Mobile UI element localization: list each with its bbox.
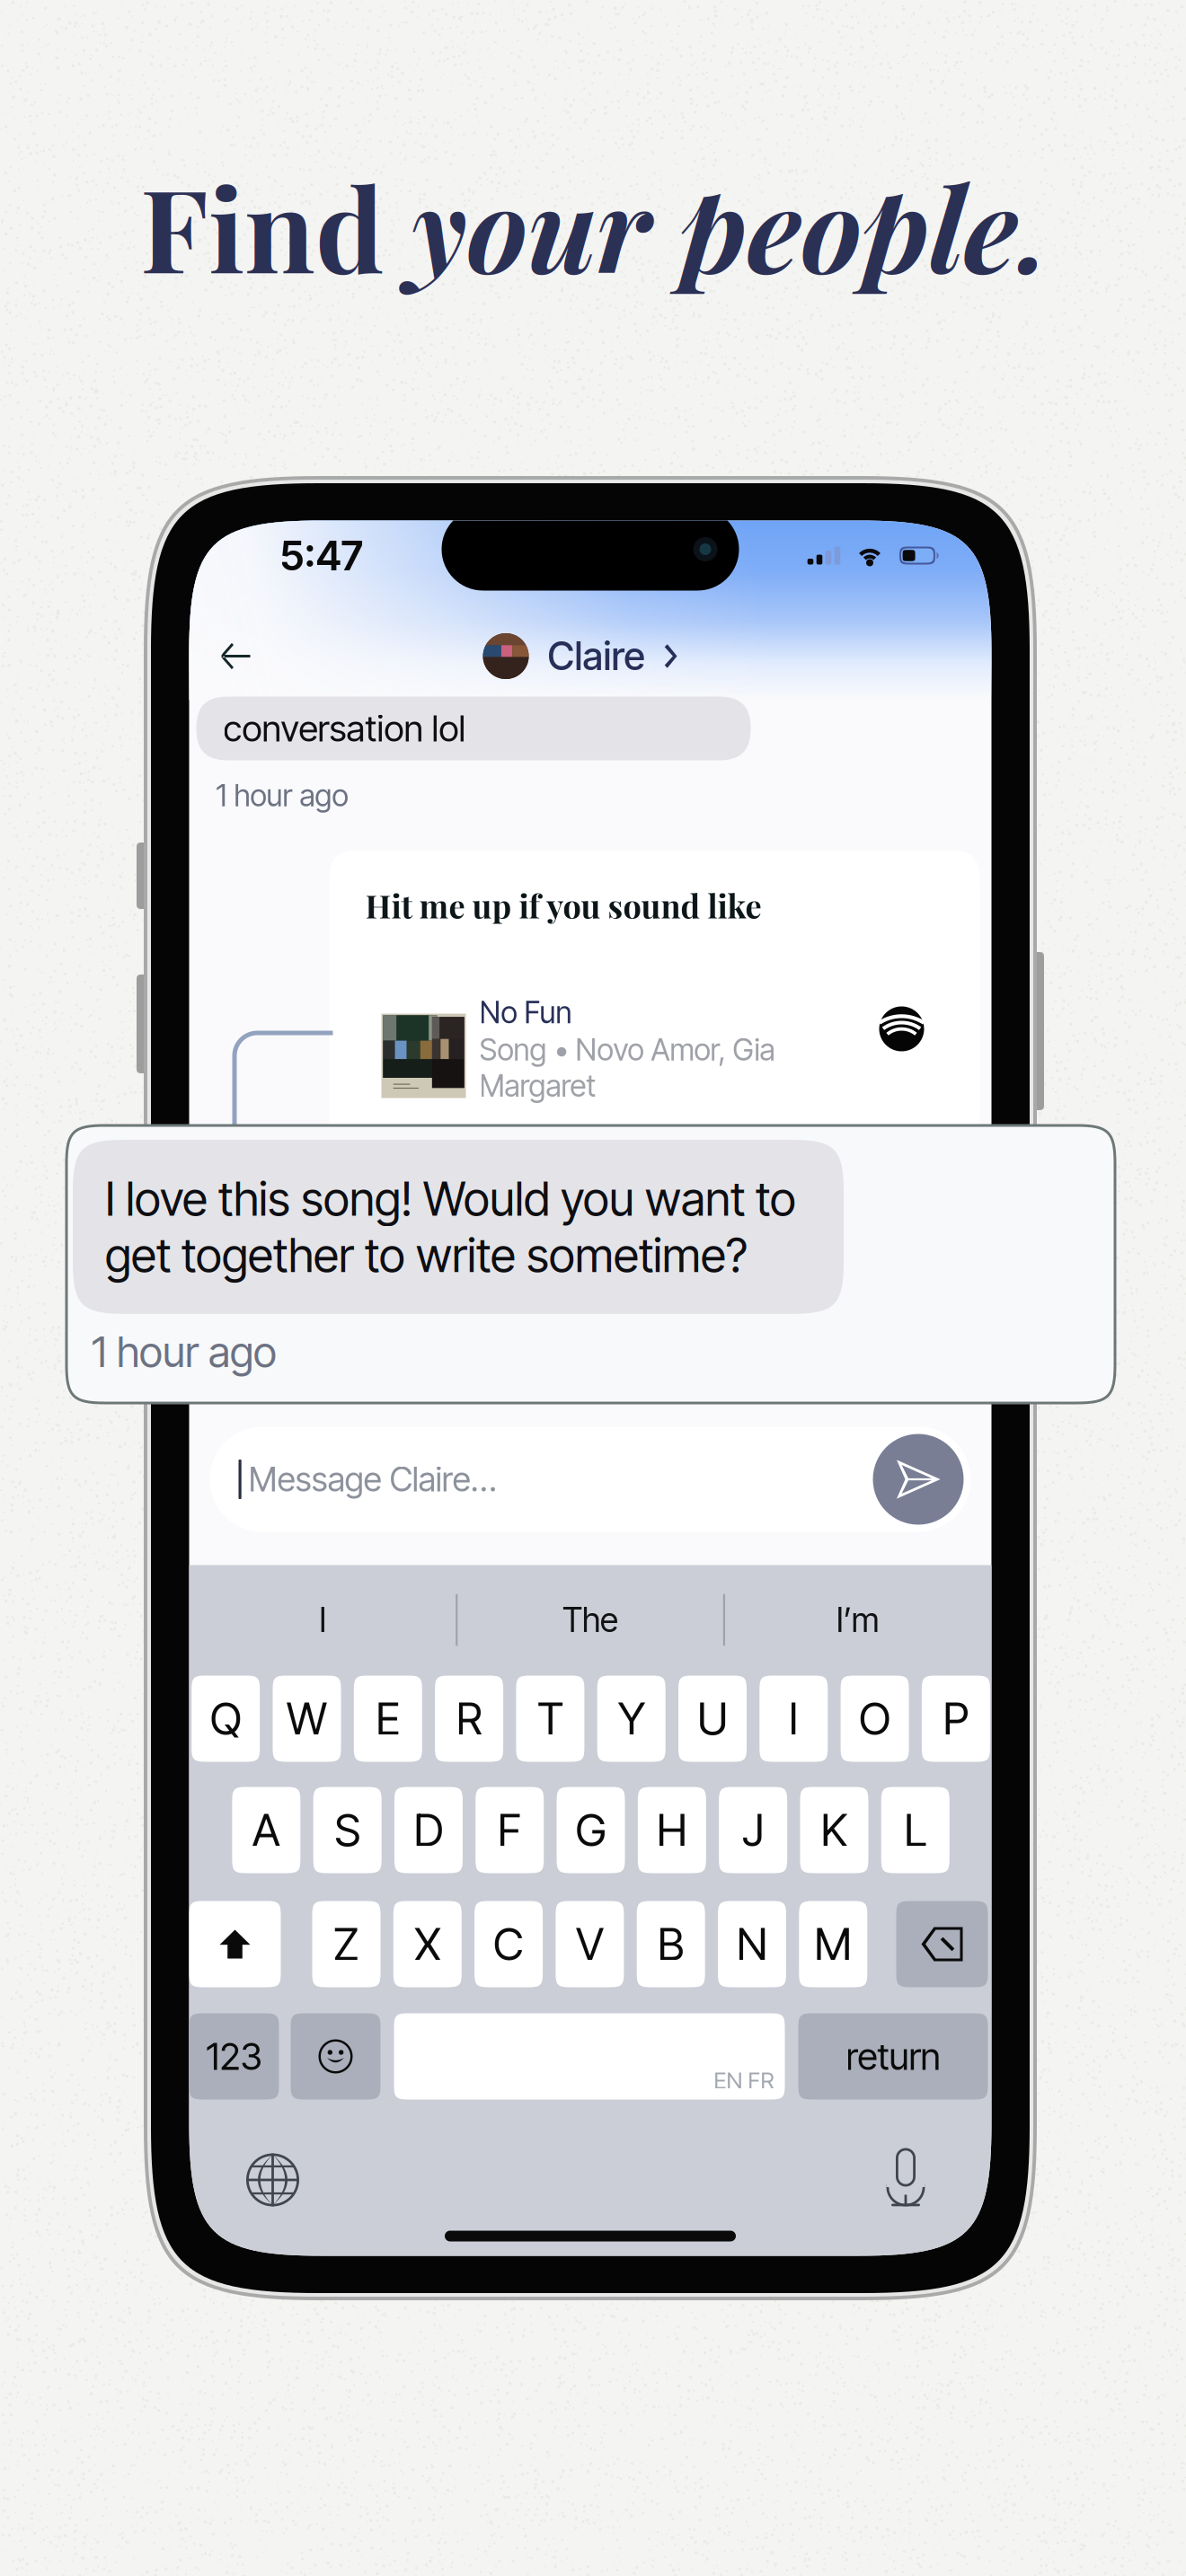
button[interactable]: W (273, 1676, 341, 1762)
button[interactable]: Emoji (291, 2013, 381, 2100)
staticText: H (657, 1803, 687, 1857)
staticText: I’m (836, 1600, 879, 1640)
button[interactable]: return (798, 2013, 988, 2100)
staticText: S (334, 1803, 360, 1857)
staticText: P (943, 1692, 969, 1746)
staticText: return (846, 2034, 940, 2079)
button[interactable]: N (718, 1901, 786, 1987)
button[interactable]: G (557, 1787, 625, 1873)
button[interactable]: Shift (189, 1901, 281, 1987)
staticText: U (697, 1692, 728, 1746)
button[interactable]: X (393, 1901, 462, 1987)
button[interactable]: K (800, 1787, 868, 1873)
button[interactable]: Send (873, 1434, 964, 1525)
staticText: Song • Novo Amor, Gia Margaret (479, 1032, 775, 1104)
staticText: N (736, 1917, 768, 1971)
staticText: M (814, 1917, 852, 1971)
staticText: Hit me up if you sound like (365, 883, 761, 926)
staticText: T (537, 1692, 563, 1746)
button[interactable]: I (759, 1676, 828, 1762)
staticText: I (789, 1692, 799, 1746)
staticText: I love this song! Would you want to get … (105, 1170, 796, 1283)
button[interactable]: A (232, 1787, 300, 1873)
button[interactable]: T (516, 1676, 584, 1762)
button[interactable]: Back (220, 641, 252, 671)
staticText: Z (333, 1917, 359, 1971)
button[interactable]: P (922, 1676, 990, 1762)
staticText: No Fun (479, 994, 572, 1030)
staticText: A (252, 1803, 280, 1857)
staticText: conversation lol (223, 707, 466, 750)
staticText: EN FR (714, 2067, 774, 2094)
staticText: O (859, 1692, 890, 1746)
button[interactable]: Y (597, 1676, 666, 1762)
staticText: W (287, 1692, 327, 1746)
button[interactable]: Z (312, 1901, 381, 1987)
button[interactable]: R (435, 1676, 503, 1762)
button[interactable]: U (678, 1676, 747, 1762)
button[interactable]: Delete (896, 1901, 988, 1987)
staticText: Y (618, 1692, 645, 1746)
staticText: B (657, 1917, 684, 1971)
button[interactable]: F (475, 1787, 544, 1873)
button[interactable]: I’m (724, 1565, 991, 1675)
staticText: X (414, 1917, 441, 1971)
button[interactable]: Dictate (886, 2148, 925, 2207)
staticText: L (904, 1803, 927, 1857)
staticText: Claire (548, 633, 645, 679)
button[interactable]: J (719, 1787, 787, 1873)
button[interactable]: I (189, 1565, 457, 1675)
staticText: The (562, 1600, 618, 1640)
staticText: Message Claire… (249, 1459, 497, 1500)
staticText: E (376, 1692, 400, 1746)
staticText: 5:47 (280, 531, 363, 580)
button[interactable]: L (881, 1787, 950, 1873)
staticText: 1 hour ago (92, 1326, 277, 1377)
staticText: Find your people. (140, 151, 1050, 300)
staticText: I (319, 1600, 326, 1640)
staticText: V (576, 1917, 604, 1971)
staticText: Q (210, 1692, 241, 1746)
button[interactable]: S (313, 1787, 381, 1873)
button[interactable]: Q (192, 1676, 260, 1762)
staticText: J (742, 1803, 764, 1857)
staticText: 1 hour ago (216, 777, 348, 813)
button[interactable]: H (638, 1787, 706, 1873)
staticText: F (498, 1803, 522, 1857)
button[interactable]: 123 (189, 2013, 279, 2100)
button[interactable]: E (354, 1676, 422, 1762)
button[interactable]: V (556, 1901, 624, 1987)
button[interactable]: C (474, 1901, 543, 1987)
staticText: C (493, 1917, 524, 1971)
button[interactable]: O (841, 1676, 909, 1762)
button[interactable]: M (799, 1901, 867, 1987)
button[interactable]: Claire (483, 632, 686, 680)
staticText: 123 (206, 2034, 262, 2079)
staticText: R (456, 1692, 482, 1746)
button[interactable]: Switch keyboard (246, 2153, 299, 2206)
staticText: G (575, 1803, 606, 1857)
button[interactable]: D (394, 1787, 463, 1873)
staticText: K (821, 1803, 848, 1857)
button[interactable]: Space (394, 2013, 785, 2100)
button[interactable]: B (637, 1901, 705, 1987)
staticText: D (414, 1803, 443, 1857)
button[interactable]: The (457, 1565, 724, 1675)
